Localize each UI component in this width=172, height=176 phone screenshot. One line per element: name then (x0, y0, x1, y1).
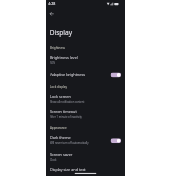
staticText: Show all notification content (50, 100, 84, 104)
staticText: Brightness level (50, 55, 78, 60)
button[interactable] (46, 148, 125, 161)
staticText: Screen saver (50, 151, 72, 157)
button[interactable] (46, 131, 125, 144)
staticText: 4:28 (48, 1, 56, 6)
button[interactable]: Dark theme (110, 138, 121, 143)
staticText: After 1 minute of inactivity (50, 115, 82, 118)
staticText: Clock (50, 158, 56, 161)
staticText: Lock display (50, 85, 67, 89)
staticText: Will never turn off automatically (50, 141, 89, 145)
staticText: Adaptive brightness (50, 72, 85, 77)
staticText: 50% (50, 61, 55, 65)
button[interactable]: Navigate up (46, 8, 57, 19)
button[interactable]: Adaptive brightness (110, 72, 121, 77)
staticText: Appearance (50, 126, 67, 130)
staticText: Brightness (50, 46, 65, 50)
button[interactable] (46, 105, 125, 118)
button[interactable] (46, 90, 125, 103)
staticText: Dark theme (50, 135, 71, 141)
staticText: Screen timeout (50, 108, 77, 114)
staticText: Display (50, 28, 72, 37)
staticText: Lock screen (50, 94, 71, 99)
button[interactable] (46, 163, 125, 173)
button[interactable] (46, 68, 125, 79)
button[interactable] (46, 51, 125, 64)
staticText: Display size and text (50, 167, 86, 172)
